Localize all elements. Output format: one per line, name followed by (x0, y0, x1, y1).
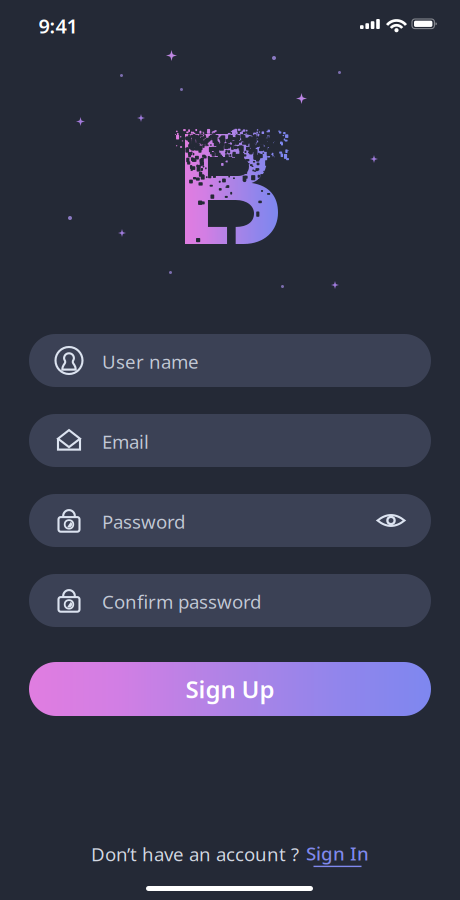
staticText: 9:41 (38, 12, 77, 39)
staticText: Confirm password (102, 589, 261, 614)
staticText: Sign Up (185, 673, 274, 705)
button[interactable]: Password (29, 494, 431, 547)
button[interactable]: Email (29, 414, 431, 467)
button[interactable]: User name (29, 334, 431, 387)
staticText: Sign In (306, 841, 369, 866)
button[interactable]: Sign In (306, 841, 369, 867)
staticText: Password (102, 509, 185, 534)
button[interactable]: Confirm password (29, 574, 431, 627)
staticText: Email (102, 429, 149, 454)
staticText: Don’t have an account ? (91, 842, 299, 866)
staticText: User name (102, 349, 199, 374)
button[interactable]: Sign Up (29, 662, 431, 716)
